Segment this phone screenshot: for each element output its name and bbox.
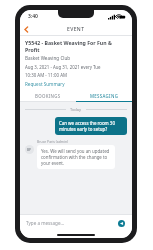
button[interactable]: Can we access the room 30 minutes early … — [55, 117, 127, 135]
button[interactable]: Request Summary — [25, 81, 65, 87]
staticText: Y5542 - Basket Weaving For Fun & Profit — [25, 39, 127, 53]
staticText: Bruce Paris (admin) — [37, 139, 69, 144]
button[interactable]: Back — [20, 23, 32, 35]
staticText: Can we access the room 30 minutes early … — [59, 120, 123, 132]
staticText: Yes. We will send you an updated confirm… — [41, 148, 111, 166]
staticText: Request Summary — [25, 81, 65, 87]
staticText: Today — [70, 107, 82, 112]
button[interactable]: MESSAGING — [76, 91, 132, 101]
button[interactable]: BOOKINGS — [20, 91, 76, 101]
staticText: BP — [27, 148, 32, 152]
staticText: EVENT — [67, 26, 85, 33]
staticText: MESSAGING — [90, 93, 119, 99]
staticText: BOOKINGS — [35, 93, 61, 99]
staticText: Aug 3, 2021 - Aug 31, 2021 every Tue — [25, 64, 101, 70]
button[interactable]: Send — [117, 219, 126, 228]
button[interactable]: Type a message... — [26, 220, 117, 226]
button[interactable]: Yes. We will send you an updated confirm… — [37, 145, 115, 169]
staticText: Type a message... — [26, 220, 65, 226]
staticText: 10:30 AM - 11:00 AM — [25, 72, 68, 78]
staticText: 3:40 — [28, 13, 38, 20]
staticText: Basket Weaving Club — [25, 55, 71, 61]
